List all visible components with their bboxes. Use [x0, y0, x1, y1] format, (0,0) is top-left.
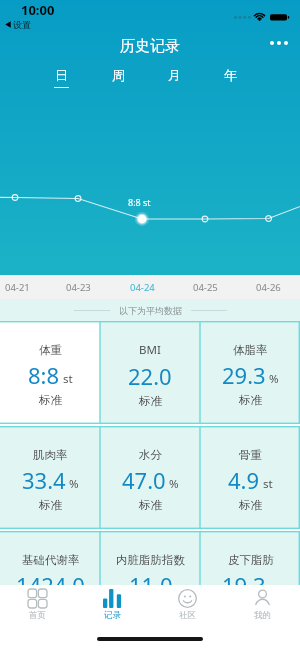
button[interactable]: 我的 — [225, 589, 300, 625]
staticText: 标准 — [239, 393, 262, 407]
staticText: 年 — [224, 67, 237, 83]
staticText: 设置 — [13, 19, 31, 30]
staticText: 10:00 — [21, 1, 55, 19]
staticText: st — [263, 476, 273, 492]
staticText: 水分 — [139, 448, 162, 462]
staticText: % — [169, 476, 179, 492]
staticText: 8:8 st — [128, 196, 151, 208]
staticText: 29.3 — [222, 360, 266, 390]
staticText: 标准 — [139, 394, 162, 408]
staticText: 日 — [55, 67, 68, 83]
staticText: 历史记录 — [120, 37, 180, 56]
staticText: 标准 — [39, 393, 62, 407]
staticText: 1424.0 — [16, 570, 85, 600]
staticText: BMI — [139, 342, 161, 358]
staticText: % — [269, 581, 279, 597]
button[interactable]: 水分 — [100, 426, 200, 529]
staticText: 11.0 — [129, 570, 173, 600]
button[interactable]: BMI — [100, 321, 200, 424]
staticText: 04-21 — [5, 281, 30, 294]
staticText: 47.0 — [122, 465, 166, 495]
staticText: 19.3 — [222, 570, 266, 600]
staticText: 标准 — [39, 498, 62, 512]
staticText: 8:8 — [28, 360, 60, 390]
staticText: 22.0 — [128, 361, 172, 391]
staticText: 肌肉率 — [33, 448, 68, 462]
staticText: 标准 — [39, 603, 62, 617]
button[interactable]: 年 — [202, 60, 258, 94]
button[interactable]: 日 — [33, 60, 90, 94]
staticText: 骨重 — [239, 448, 262, 462]
staticText: 皮下脂肪 — [228, 553, 274, 567]
button[interactable]: 肌肉率 — [0, 426, 100, 529]
staticText: 标准 — [239, 603, 262, 617]
staticText: 04-25 — [193, 281, 218, 294]
button[interactable]: 骨重 — [200, 426, 300, 529]
button[interactable]: 周 — [90, 60, 146, 94]
button[interactable]: 月 — [146, 60, 202, 94]
staticText: st — [63, 371, 73, 387]
button[interactable]: 社区 — [150, 589, 225, 625]
button[interactable]: 基础代谢率 — [0, 531, 100, 634]
staticText: 以下为平均数据 — [119, 305, 182, 316]
staticText: 我的 — [254, 610, 271, 621]
staticText: 04-26 — [256, 281, 281, 294]
staticText: 标准 — [239, 498, 262, 512]
staticText: 周 — [112, 67, 125, 83]
button[interactable]: 体脂率 — [200, 321, 300, 424]
button[interactable]: 皮下脂肪 — [200, 531, 300, 634]
staticText: 体重 — [39, 343, 62, 357]
button[interactable]: 体重 — [0, 321, 100, 424]
staticText: 月 — [168, 67, 181, 83]
staticText: 体脂率 — [233, 343, 268, 357]
button[interactable]: More options — [259, 33, 300, 53]
button[interactable]: 记录 — [75, 589, 150, 625]
staticText: 标准 — [139, 498, 162, 512]
staticText: % — [269, 371, 279, 387]
staticText: % — [69, 476, 79, 492]
staticText: 首页 — [29, 610, 46, 621]
button[interactable]: 首页 — [0, 589, 75, 625]
staticText: 记录 — [104, 610, 121, 621]
staticText: 基础代谢率 — [22, 553, 80, 567]
staticText: 4.9 — [228, 465, 260, 495]
button[interactable]: 内脏脂肪指数 — [100, 531, 200, 634]
staticText: 内脏脂肪指数 — [116, 553, 185, 567]
staticText: 社区 — [179, 610, 196, 621]
staticText: 04-23 — [66, 281, 91, 294]
staticText: 04-24 — [130, 281, 155, 294]
staticText: 33.4 — [22, 465, 66, 495]
